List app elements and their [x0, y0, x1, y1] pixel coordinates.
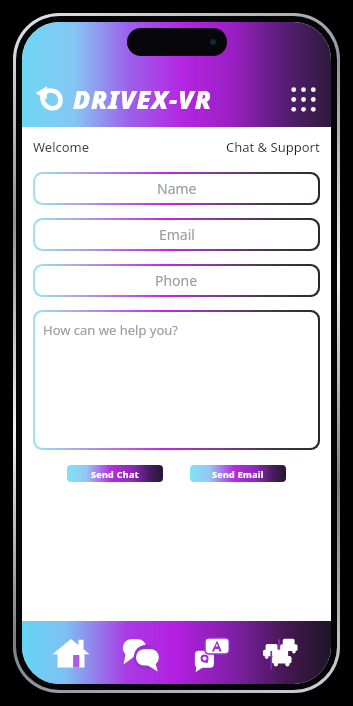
- button[interactable]: FAQ: [185, 626, 239, 680]
- staticText: How can we help you?: [43, 321, 178, 339]
- button[interactable]: Email: [35, 220, 318, 249]
- button[interactable]: Home: [44, 626, 98, 680]
- staticText: Welcome: [33, 138, 90, 156]
- button[interactable]: Send Chat: [67, 465, 163, 482]
- button[interactable]: Send Email: [190, 465, 286, 482]
- button[interactable]: Name: [35, 174, 318, 203]
- staticText: Name: [157, 179, 197, 198]
- staticText: Phone: [155, 271, 198, 290]
- staticText: Send Chat: [91, 468, 139, 480]
- button[interactable]: Traffic: [255, 626, 309, 680]
- button[interactable]: Menu: [284, 80, 322, 118]
- staticText: DRIVEX-VR: [73, 82, 284, 116]
- button[interactable]: Phone: [35, 266, 318, 295]
- button[interactable]: How can we help you?: [35, 312, 318, 448]
- staticText: Email: [159, 225, 195, 244]
- staticText: Chat & Support: [226, 138, 320, 156]
- button[interactable]: Back: [29, 79, 69, 119]
- button[interactable]: Chat: [114, 626, 168, 680]
- staticText: Send Email: [212, 468, 264, 480]
